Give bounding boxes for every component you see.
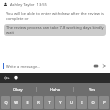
button[interactable]: P <box>99 96 109 109</box>
button[interactable]: T <box>44 96 54 109</box>
button[interactable]: Yes <box>74 83 110 95</box>
staticText: O <box>91 100 95 105</box>
button[interactable]: You will be able to enter withdraw after… <box>4 10 106 22</box>
staticText: P <box>103 100 106 105</box>
staticText: W <box>14 100 18 105</box>
staticText: Haha <box>50 87 60 92</box>
staticText: The review process can take 7-8 working … <box>6 25 104 35</box>
button[interactable]: R <box>33 96 43 109</box>
button[interactable]: Haha <box>37 83 73 95</box>
staticText: E <box>26 100 29 105</box>
button[interactable]: The review process can take 7-8 working … <box>4 24 106 36</box>
button[interactable]: Contact <box>0 0 110 9</box>
button[interactable]: U <box>66 96 76 109</box>
staticText: Write a message... <box>6 64 41 69</box>
button[interactable]: Password <box>4 75 10 81</box>
other: Contact <box>3 2 8 7</box>
staticText: Ashley Taylor 13:55 <box>10 2 47 7</box>
button[interactable]: Emoji <box>93 63 99 69</box>
staticText: You will be able to enter withdraw after… <box>6 11 104 21</box>
staticText: Okay <box>13 87 23 92</box>
button[interactable]: E <box>22 96 32 109</box>
button[interactable]: Send <box>101 63 107 69</box>
staticText: R <box>37 100 40 105</box>
staticText: Y <box>59 100 62 105</box>
button[interactable]: O <box>88 96 98 109</box>
button[interactable]: Y <box>55 96 65 109</box>
button[interactable]: I <box>77 96 87 109</box>
button[interactable]: Q <box>1 96 10 109</box>
button[interactable]: Okay <box>0 83 36 95</box>
staticText: Yes <box>89 87 96 92</box>
staticText: T <box>48 100 51 105</box>
staticText: U <box>70 100 73 105</box>
staticText: Q <box>4 100 8 105</box>
button[interactable]: W <box>11 96 21 109</box>
button[interactable]: Location <box>13 75 19 81</box>
staticText: I <box>81 100 83 105</box>
